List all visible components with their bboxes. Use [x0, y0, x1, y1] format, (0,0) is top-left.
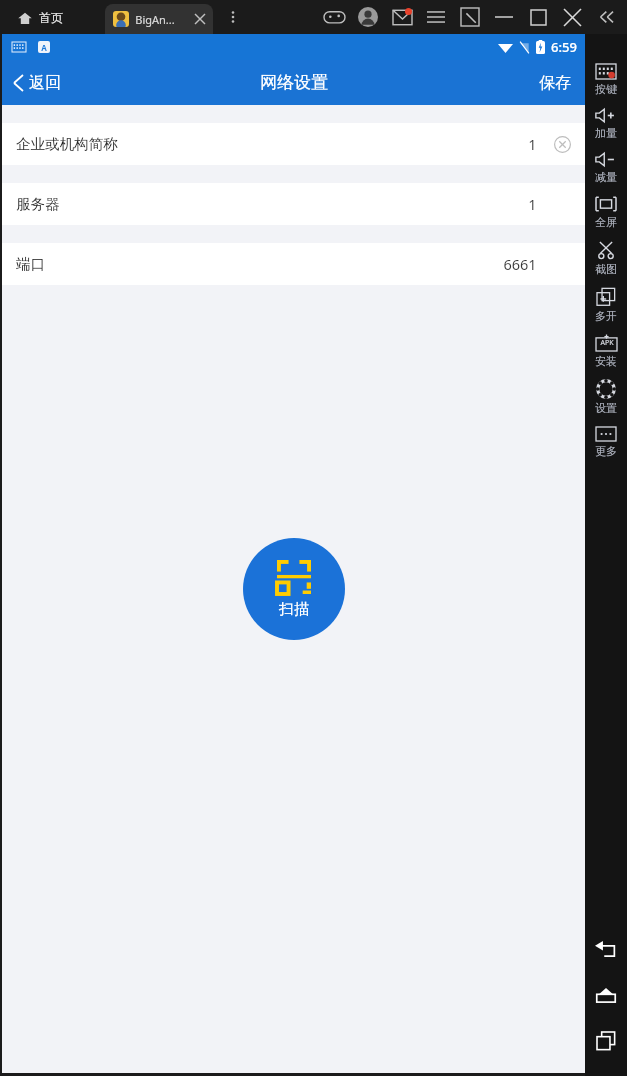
staticText: 加量: [595, 126, 617, 140]
button[interactable]: 更多: [585, 421, 627, 464]
staticText: 6:59: [551, 38, 577, 56]
staticText: 企业或机构简称: [16, 135, 118, 153]
staticText: 安装: [595, 354, 617, 368]
button[interactable]: Games: [317, 0, 351, 34]
button[interactable]: More tab options: [222, 6, 244, 28]
button[interactable]: 截图: [585, 235, 627, 282]
staticText: 设置: [595, 401, 617, 415]
button[interactable]: 返回: [2, 60, 71, 105]
staticText: 多开: [595, 309, 617, 323]
button[interactable]: 多开: [585, 282, 627, 329]
button[interactable]: APK: [585, 329, 627, 374]
button[interactable]: 保存: [525, 60, 585, 105]
button[interactable]: Messages: [385, 0, 419, 34]
staticText: 保存: [539, 73, 571, 93]
button[interactable]: 首页: [14, 6, 67, 29]
staticText: 扫描: [279, 600, 309, 619]
staticText: 服务器: [16, 195, 60, 213]
staticText: 全屏: [595, 215, 617, 229]
staticText: A: [41, 42, 47, 53]
staticText: 截图: [595, 262, 617, 276]
button[interactable]: Recents: [585, 1028, 627, 1054]
staticText: 返回: [29, 73, 61, 93]
staticText: 1: [528, 134, 537, 154]
button[interactable]: 端口: [2, 243, 585, 285]
button[interactable]: Collapse: [589, 0, 623, 34]
staticText: BigAn...: [135, 12, 175, 27]
button[interactable]: Close: [555, 0, 589, 34]
staticText: 减量: [595, 170, 617, 184]
staticText: 6661: [503, 254, 537, 274]
button[interactable]: 企业或机构简称: [2, 123, 585, 165]
button[interactable]: Clear: [551, 133, 573, 155]
button[interactable]: Back: [585, 936, 627, 962]
button[interactable]: 全屏: [585, 190, 627, 235]
staticText: 1: [528, 194, 537, 214]
button[interactable]: Account: [351, 0, 385, 34]
button[interactable]: BigAn...: [105, 4, 213, 34]
button[interactable]: Menu: [419, 0, 453, 34]
button[interactable]: Minimize: [487, 0, 521, 34]
staticText: 首页: [39, 10, 63, 25]
staticText: 网络设置: [260, 72, 328, 93]
staticText: 端口: [16, 255, 45, 273]
button[interactable]: 加量: [585, 102, 627, 146]
button[interactable]: Maximize: [521, 0, 555, 34]
button[interactable]: 按键: [585, 58, 627, 102]
button[interactable]: 扫描: [243, 538, 345, 640]
staticText: 更多: [595, 444, 617, 458]
staticText: 按键: [595, 82, 617, 96]
button[interactable]: 减量: [585, 146, 627, 190]
staticText: APK: [600, 338, 614, 348]
button[interactable]: Resize: [453, 0, 487, 34]
button[interactable]: 服务器: [2, 183, 585, 225]
button[interactable]: 设置: [585, 374, 627, 421]
button[interactable]: Home: [585, 982, 627, 1008]
